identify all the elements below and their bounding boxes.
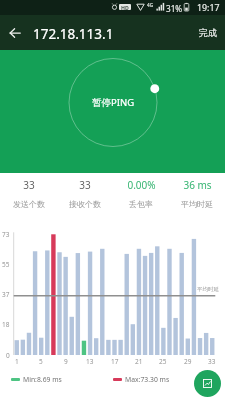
- staticText: 4G: [147, 2, 153, 8]
- staticText: 13: [86, 357, 94, 366]
- staticText: 36 ms: [183, 178, 212, 192]
- staticText: 33: [23, 178, 35, 192]
- staticText: 17: [111, 357, 119, 366]
- staticText: 37: [2, 290, 10, 299]
- button[interactable]: 完成: [191, 19, 225, 46]
- staticText: 丢包率: [129, 199, 153, 209]
- button[interactable]: 0.00%: [113, 178, 169, 209]
- staticText: 21: [135, 357, 143, 366]
- staticText: 1: [15, 357, 19, 366]
- staticText: 9: [64, 357, 68, 366]
- staticText: 73: [2, 230, 10, 239]
- button[interactable]: Back: [4, 25, 26, 47]
- button[interactable]: 36 ms: [169, 178, 225, 209]
- staticText: 29: [184, 357, 192, 366]
- staticText: 平均时延: [197, 286, 219, 293]
- staticText: 19:17: [197, 2, 220, 14]
- staticText: 0: [6, 351, 10, 360]
- staticText: 31%: [166, 3, 183, 14]
- staticText: 0.00%: [127, 178, 156, 192]
- staticText: 33: [79, 178, 91, 192]
- staticText: 接收个数: [69, 199, 101, 209]
- staticText: 发送个数: [13, 199, 45, 209]
- staticText: Min:8.69 ms: [23, 375, 62, 384]
- button[interactable]: 暂停PING: [89, 94, 137, 110]
- staticText: Max:73.30 ms: [125, 375, 170, 384]
- staticText: 55: [2, 260, 10, 269]
- staticText: 172.18.113.1: [33, 25, 114, 43]
- staticText: 平均时延: [181, 199, 213, 209]
- button[interactable]: Show chart: [194, 370, 221, 397]
- staticText: 25: [159, 357, 167, 366]
- staticText: 暂停PING: [92, 96, 135, 109]
- button[interactable]: 33: [0, 178, 57, 209]
- staticText: 5: [39, 357, 43, 366]
- button[interactable]: 33: [57, 178, 113, 209]
- staticText: 33: [208, 357, 216, 366]
- staticText: 完成: [199, 27, 217, 38]
- staticText: 18: [2, 320, 10, 329]
- staticText: HD: [121, 4, 129, 10]
